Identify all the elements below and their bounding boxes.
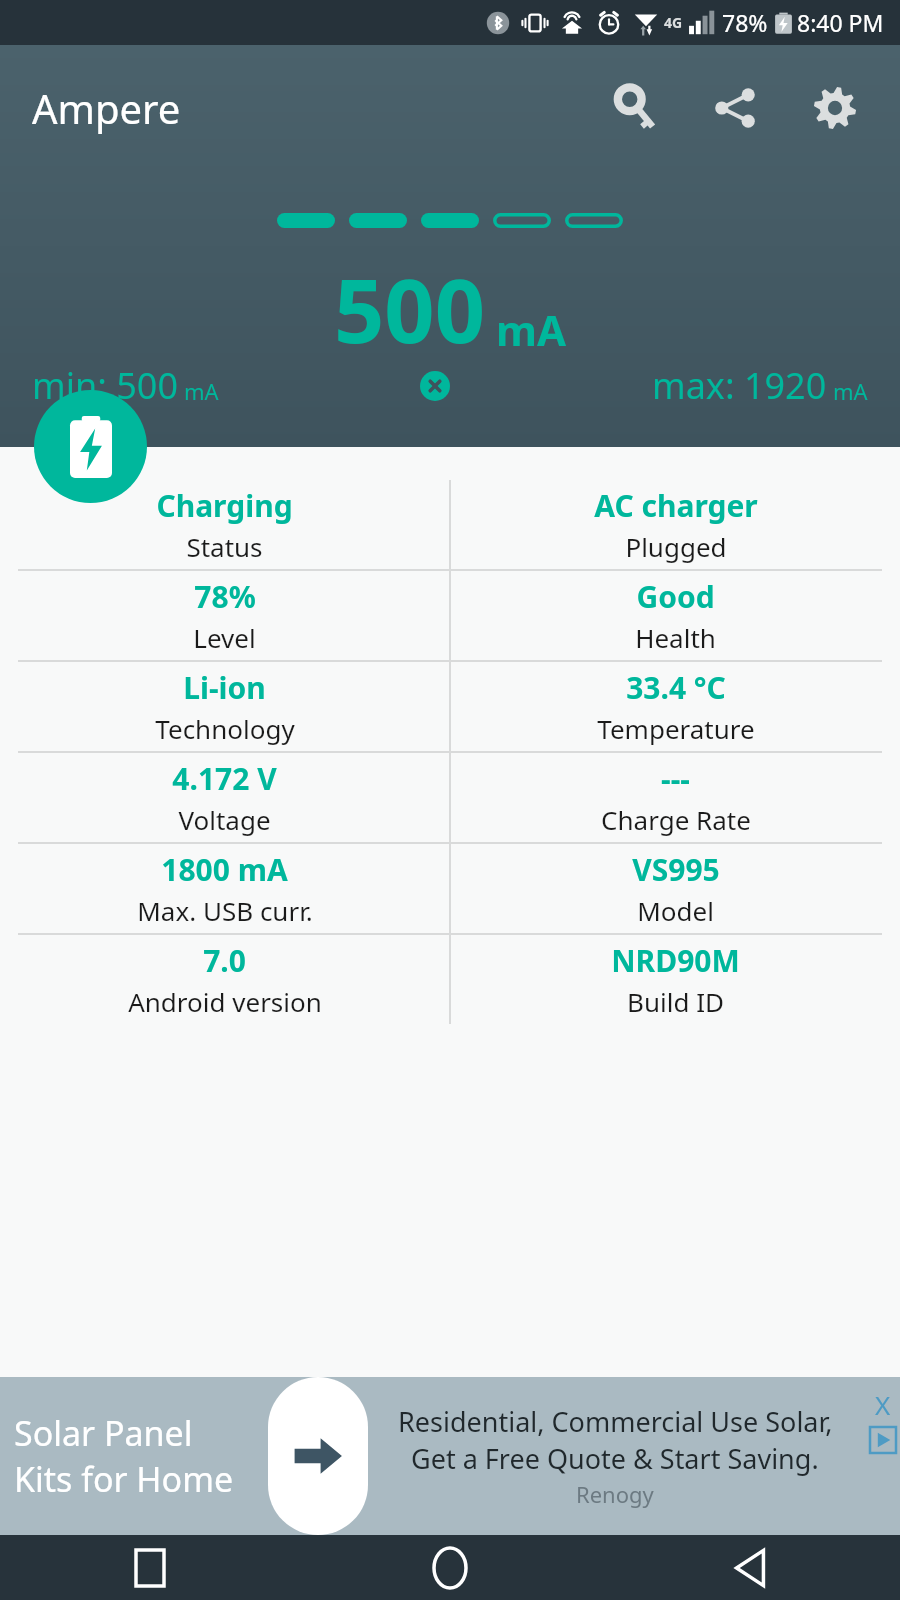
- button[interactable]: Home: [300, 1535, 600, 1600]
- staticText: Ampere: [32, 81, 181, 135]
- staticText: 500: [334, 249, 486, 369]
- button[interactable]: Good: [451, 571, 900, 660]
- staticText: Build ID: [627, 984, 724, 1019]
- button[interactable]: Unlock pro: [602, 75, 668, 141]
- button[interactable]: Li-ion: [0, 662, 449, 751]
- staticText: Technology: [155, 711, 295, 746]
- staticText: 33.4 °C: [626, 667, 726, 708]
- button[interactable]: 78%: [0, 571, 449, 660]
- button[interactable]: Ad choices: [868, 1425, 898, 1455]
- staticText: Renogy: [576, 1479, 654, 1509]
- button[interactable]: Recent apps: [0, 1535, 300, 1600]
- button[interactable]: 33.4 °C: [451, 662, 900, 751]
- button[interactable]: Solar Panel: [0, 1377, 900, 1535]
- staticText: 1800 mA: [161, 849, 288, 890]
- staticText: Model: [637, 893, 714, 928]
- button[interactable]: AC charger: [451, 480, 900, 569]
- staticText: 78%: [194, 576, 256, 617]
- staticText: min: 500: [32, 361, 178, 410]
- staticText: Plugged: [625, 529, 727, 564]
- staticText: Status: [186, 529, 263, 564]
- staticText: Health: [635, 620, 716, 655]
- staticText: Solar Panel: [14, 1410, 193, 1456]
- staticText: 78%: [722, 7, 768, 38]
- button[interactable]: NRD90M: [451, 935, 900, 1024]
- staticText: 8:40 PM: [797, 7, 884, 38]
- button[interactable]: 7.0: [0, 935, 449, 1024]
- staticText: 4.172 V: [172, 758, 277, 799]
- staticText: mA: [496, 301, 567, 358]
- staticText: VS995: [632, 849, 720, 890]
- staticText: Good: [636, 576, 715, 617]
- staticText: Level: [193, 620, 256, 655]
- staticText: Charge Rate: [601, 802, 751, 837]
- staticText: Charging: [156, 485, 293, 526]
- button[interactable]: Battery charging: [34, 390, 147, 503]
- staticText: Li-ion: [183, 667, 266, 708]
- staticText: NRD90M: [611, 940, 740, 981]
- staticText: AC charger: [594, 485, 758, 526]
- staticText: max: 1920: [652, 361, 827, 410]
- staticText: Residential, Commercial Use Solar,: [398, 1403, 833, 1440]
- staticText: Max. USB curr.: [137, 893, 313, 928]
- button[interactable]: Settings: [802, 75, 868, 141]
- staticText: mA: [833, 376, 868, 406]
- button[interactable]: Back: [600, 1535, 900, 1600]
- button[interactable]: Close ad: [867, 1387, 899, 1419]
- staticText: Android version: [128, 984, 322, 1019]
- staticText: Kits for Home: [14, 1456, 234, 1502]
- button[interactable]: 1800 mA: [0, 844, 449, 933]
- staticText: ---: [661, 758, 690, 799]
- button[interactable]: Share: [702, 75, 768, 141]
- staticText: Get a Free Quote & Start Saving.: [411, 1440, 819, 1477]
- staticText: 4G: [664, 13, 683, 32]
- button[interactable]: Charging: [0, 480, 449, 569]
- button[interactable]: ---: [451, 753, 900, 842]
- button[interactable]: Reset: [412, 363, 458, 409]
- staticText: Temperature: [597, 711, 755, 746]
- button[interactable]: VS995: [451, 844, 900, 933]
- button[interactable]: 4.172 V: [0, 753, 449, 842]
- staticText: mA: [184, 376, 219, 406]
- staticText: Voltage: [178, 802, 271, 837]
- staticText: X: [875, 1387, 891, 1419]
- staticText: 7.0: [203, 940, 246, 981]
